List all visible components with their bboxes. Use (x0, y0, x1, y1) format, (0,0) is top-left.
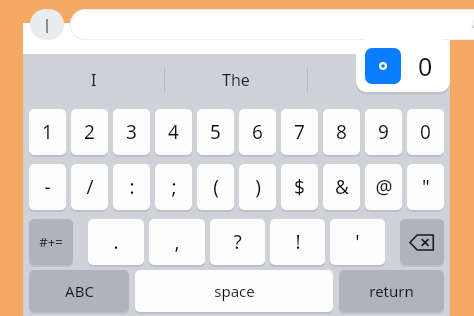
staticText: 1 (42, 119, 53, 145)
staticText: - (44, 174, 51, 200)
button[interactable]: ? (210, 219, 265, 265)
staticText: ; (171, 174, 177, 200)
button[interactable]: Backspace (400, 219, 444, 265)
staticText: 6 (252, 119, 263, 145)
staticText: 3 (126, 119, 137, 145)
staticText: / (86, 174, 94, 200)
button[interactable]: : (113, 164, 150, 210)
button[interactable]: 0 (407, 109, 444, 155)
button[interactable]: The (165, 54, 307, 105)
staticText: I (91, 69, 97, 91)
button[interactable]: 6 (239, 109, 276, 155)
staticText: . (113, 229, 119, 255)
button[interactable]: ) (239, 164, 276, 210)
staticText: ) (255, 174, 261, 200)
staticText: : (129, 174, 135, 200)
button[interactable]: Degree symbol (356, 39, 450, 92)
staticText: 4 (168, 119, 179, 145)
staticText: 0 (420, 119, 431, 145)
button[interactable]: ! (270, 219, 325, 265)
button[interactable]: ; (155, 164, 192, 210)
staticText: return (369, 281, 414, 301)
button[interactable]: #+= (29, 219, 73, 265)
button[interactable]: , (149, 219, 205, 265)
staticText: 9 (378, 119, 389, 145)
staticText: & (335, 174, 349, 200)
staticText: @ (375, 174, 393, 200)
staticText: 2 (84, 119, 95, 145)
button[interactable]: 1 (29, 109, 66, 155)
button[interactable]: - (29, 164, 66, 210)
staticText: ' (355, 229, 360, 255)
button[interactable]: 7 (281, 109, 318, 155)
button[interactable]: 4 (155, 109, 192, 155)
staticText: 0 (418, 49, 433, 83)
button[interactable]: 2 (71, 109, 108, 155)
button[interactable]: 9 (365, 109, 402, 155)
staticText: 8 (336, 119, 347, 145)
staticText: The (222, 69, 250, 91)
other: Degree symbol (365, 48, 401, 84)
button[interactable]: @ (365, 164, 402, 210)
button[interactable]: ' (330, 219, 385, 265)
staticText: " (422, 174, 430, 200)
staticText: 5 (210, 119, 221, 145)
other: Voice input (470, 18, 474, 31)
button[interactable] (308, 54, 450, 105)
button[interactable]: ( (197, 164, 234, 210)
staticText: , (174, 229, 180, 255)
staticText: space (214, 281, 255, 301)
staticText: ! (295, 229, 301, 255)
staticText: ABC (65, 281, 94, 301)
button[interactable]: . (88, 219, 144, 265)
staticText: #+= (39, 233, 63, 251)
button[interactable]: Add attachment (30, 9, 64, 40)
staticText: ( (213, 174, 219, 200)
button[interactable]: ABC (29, 270, 129, 312)
button[interactable]: $ (281, 164, 318, 210)
button[interactable]: 5 (197, 109, 234, 155)
button[interactable]: 3 (113, 109, 150, 155)
staticText: ? (233, 229, 242, 255)
button[interactable]: I (23, 54, 164, 105)
button[interactable]: Voice input (70, 9, 474, 40)
button[interactable]: & (323, 164, 360, 210)
button[interactable]: " (407, 164, 444, 210)
button[interactable]: 8 (323, 109, 360, 155)
button[interactable]: space (135, 270, 333, 312)
staticText: 7 (294, 119, 305, 145)
button[interactable]: return (339, 270, 444, 312)
button[interactable]: / (71, 164, 108, 210)
staticText: $ (294, 174, 305, 200)
